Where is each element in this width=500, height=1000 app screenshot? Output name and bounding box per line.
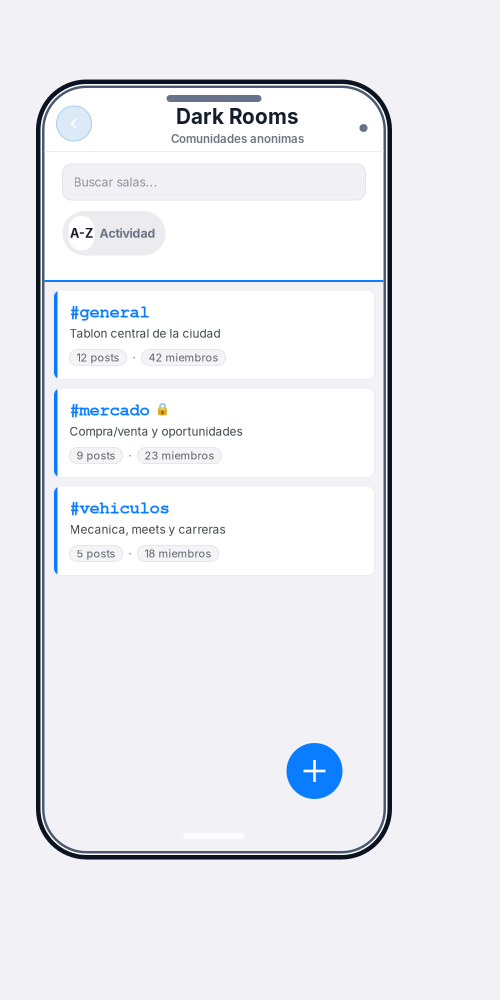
staticText: Tablon central de la ciudad — [69, 326, 220, 341]
staticText: #general — [69, 299, 149, 322]
staticText: 9 posts — [76, 449, 115, 462]
staticText: 18 miembros — [144, 547, 211, 560]
button[interactable]: #general — [53, 290, 374, 379]
button[interactable]: Actividad — [99, 216, 159, 250]
staticText: Actividad — [99, 226, 155, 241]
staticText: · — [128, 547, 131, 560]
staticText: Compra/venta y oportunidades — [69, 424, 242, 439]
staticText: 🔒 — [154, 402, 169, 416]
button[interactable]: Create room — [286, 743, 342, 799]
staticText: Buscar salas... — [73, 175, 157, 189]
staticText: Dark Rooms — [176, 104, 299, 129]
staticText: Comunidades anonimas — [171, 132, 304, 146]
staticText: 5 posts — [76, 547, 115, 560]
staticText: #vehiculos — [69, 495, 169, 518]
staticText: Mecanica, meets y carreras — [69, 522, 225, 537]
staticText: 12 posts — [76, 351, 119, 364]
staticText: 42 miembros — [148, 351, 218, 364]
staticText: · — [132, 351, 135, 364]
button[interactable]: Back — [56, 106, 91, 141]
button[interactable]: A-Z — [68, 216, 94, 250]
button[interactable]: #mercado — [53, 388, 374, 477]
staticText: #mercado — [69, 397, 149, 420]
button[interactable]: #vehiculos — [53, 486, 374, 575]
staticText: 23 miembros — [144, 449, 214, 462]
staticText: · — [128, 449, 131, 462]
staticText: A-Z — [70, 226, 93, 241]
